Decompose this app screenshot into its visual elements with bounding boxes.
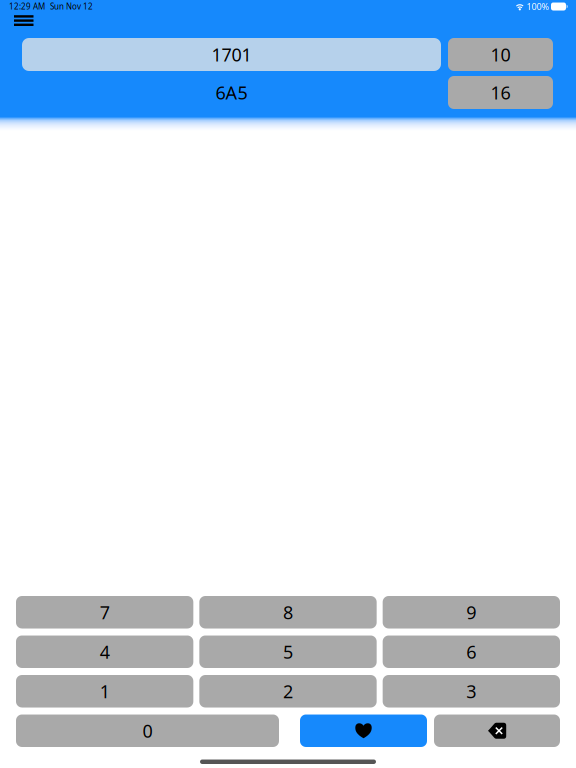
staticText: 2 — [283, 679, 293, 703]
button[interactable]: 8 — [199, 596, 377, 628]
staticText: 6 — [466, 639, 476, 664]
staticText: 1 — [100, 679, 110, 703]
staticText: 7 — [100, 600, 110, 624]
button[interactable]: Delete — [434, 714, 560, 747]
button[interactable]: 1 — [16, 675, 193, 707]
button[interactable]: 0 — [16, 714, 279, 747]
staticText: 5 — [283, 639, 293, 664]
button[interactable]: 10 — [448, 38, 553, 71]
staticText: 0 — [142, 718, 152, 743]
staticText: Sun Nov 12 — [50, 1, 93, 12]
button[interactable]: 6 — [383, 635, 560, 668]
button[interactable]: 9 — [383, 596, 560, 628]
staticText: 16 — [490, 80, 510, 105]
staticText: 1701 — [211, 42, 251, 67]
staticText: 4 — [100, 639, 110, 664]
staticText: 12:29 AM — [9, 1, 45, 12]
staticText: 9 — [466, 600, 476, 624]
button[interactable]: 3 — [383, 675, 560, 707]
button[interactable]: Favourite — [300, 714, 427, 747]
button[interactable]: 2 — [199, 675, 377, 707]
staticText: 10 — [490, 42, 510, 67]
button[interactable]: Menu — [0, 13, 47, 28]
staticText: 3 — [466, 679, 476, 703]
staticText: 6A5 — [215, 80, 247, 105]
staticText: 8 — [283, 600, 293, 624]
staticText: 100% — [526, 0, 548, 13]
button[interactable]: 5 — [199, 635, 377, 668]
button[interactable]: 7 — [16, 596, 193, 628]
button[interactable]: 16 — [448, 76, 553, 109]
button[interactable]: 4 — [16, 635, 193, 668]
